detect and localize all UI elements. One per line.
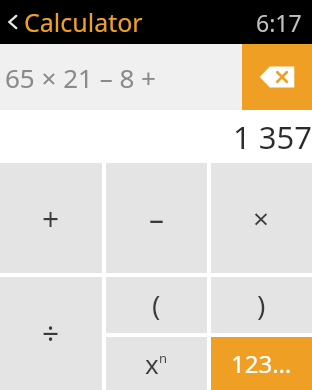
button[interactable]: 123…	[211, 337, 312, 390]
staticText: 1 357	[233, 116, 312, 158]
staticText: 123…	[231, 347, 292, 380]
staticText: n	[159, 349, 168, 367]
button[interactable]: Delete	[242, 44, 312, 110]
staticText: )	[257, 286, 266, 324]
staticText: x	[145, 346, 159, 381]
staticText: –	[149, 198, 164, 239]
button[interactable]: ÷	[0, 277, 102, 390]
staticText: 6:17	[256, 7, 302, 38]
button[interactable]: Back	[2, 11, 24, 33]
button[interactable]: )	[211, 277, 312, 333]
button[interactable]: (	[106, 277, 207, 333]
button[interactable]: –	[106, 163, 207, 273]
staticText: 65 × 21 – 8 +	[5, 60, 156, 95]
button[interactable]: +	[0, 163, 102, 273]
staticText: ÷	[42, 313, 60, 354]
staticText: (	[152, 286, 161, 324]
staticText: ×	[253, 199, 270, 237]
button[interactable]: ×	[211, 163, 312, 273]
staticText: Calculator	[24, 5, 143, 39]
button[interactable]: x	[106, 337, 207, 390]
staticText: +	[42, 198, 60, 239]
